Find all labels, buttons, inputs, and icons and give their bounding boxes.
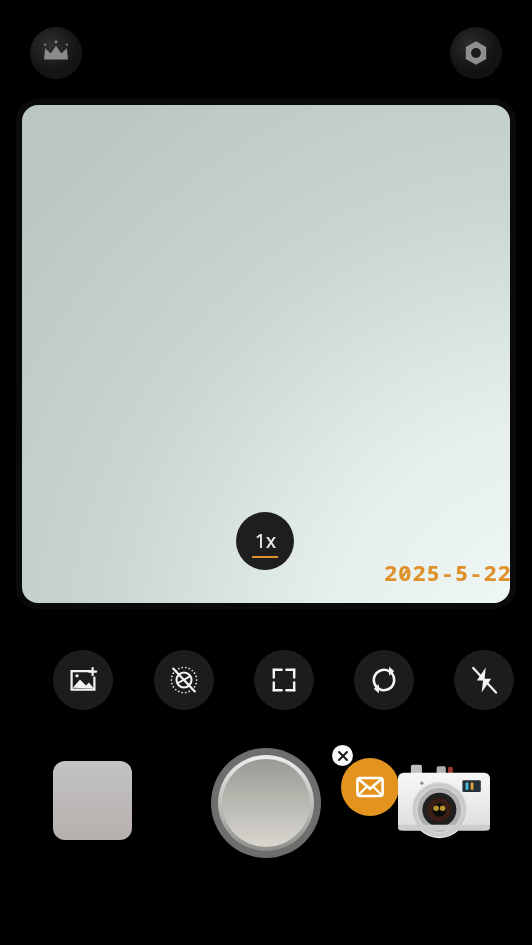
button[interactable]: Gallery — [53, 761, 132, 840]
button[interactable]: Beauty off — [154, 650, 214, 710]
button[interactable]: Settings — [450, 27, 502, 79]
button[interactable]: Premium — [30, 27, 82, 79]
staticText: 2025-5-22 — [384, 557, 510, 587]
button[interactable]: Framing — [254, 650, 314, 710]
button[interactable]: Send — [341, 758, 399, 816]
button[interactable]: Shutter — [211, 748, 321, 858]
button[interactable]: Flash off — [454, 650, 514, 710]
button[interactable]: Add photo — [53, 650, 113, 710]
button[interactable]: Switch camera — [354, 650, 414, 710]
button[interactable] — [398, 761, 490, 835]
button[interactable]: 1x — [236, 512, 294, 570]
button[interactable]: Close — [332, 745, 353, 766]
staticText: 1x — [255, 528, 276, 554]
